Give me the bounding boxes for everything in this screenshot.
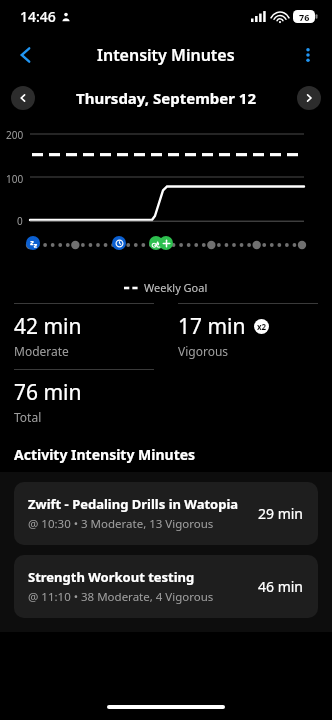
staticText: Zwift - Pedaling Drills in Watopia	[28, 495, 239, 513]
staticText: Weekly Goal	[144, 280, 208, 295]
staticText: 200	[6, 128, 24, 142]
staticText: Total	[14, 409, 42, 425]
button[interactable]: Zwift - Pedaling Drills in Watopia	[14, 482, 318, 545]
button[interactable]: Back	[8, 37, 44, 73]
staticText: 17 min	[178, 312, 246, 341]
staticText: 0	[17, 214, 23, 228]
staticText: 76 min	[14, 378, 82, 407]
staticText: Strength Workout testing	[28, 568, 195, 586]
staticText: 14:46	[20, 7, 56, 26]
staticText: Vigorous	[178, 343, 229, 359]
staticText: 46 min	[258, 577, 304, 596]
button[interactable]: Next day	[297, 86, 321, 110]
button[interactable]: More options	[290, 37, 326, 73]
staticText: 76	[299, 11, 310, 23]
staticText: 29 min	[258, 504, 304, 523]
staticText: Thursday, September 12	[76, 88, 256, 108]
staticText: 42 min	[14, 312, 82, 341]
staticText: @ 10:30 • 3 Moderate, 13 Vigorous	[28, 516, 214, 532]
staticText: x2	[257, 321, 267, 332]
staticText: Intensity Minutes	[97, 44, 235, 66]
staticText: @ 11:10 • 38 Moderate, 4 Vigorous	[28, 589, 214, 605]
button[interactable]: Strength Workout testing	[14, 555, 318, 618]
staticText: Moderate	[14, 343, 69, 359]
button[interactable]: Previous day	[11, 86, 35, 110]
staticText: Activity Intensity Minutes	[14, 445, 196, 464]
staticText: 100	[6, 172, 24, 186]
